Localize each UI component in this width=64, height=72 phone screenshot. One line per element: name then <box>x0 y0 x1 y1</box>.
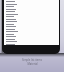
button[interactable]: List item 1 <box>4 0 59 3</box>
button[interactable]: List item 9 <box>4 24 59 27</box>
button[interactable]: List item 6 <box>4 15 59 18</box>
button[interactable]: List item 15 <box>4 42 59 45</box>
button[interactable]: List item 12 <box>4 33 59 36</box>
button[interactable]: List item 13 <box>4 36 59 39</box>
button[interactable]: List item 2 <box>4 3 59 6</box>
button[interactable]: List item 3 <box>4 6 59 9</box>
button[interactable]: List item 11 <box>4 30 59 33</box>
button[interactable]: List item 10 <box>4 27 59 30</box>
button[interactable]: List item 7 <box>4 18 59 21</box>
button[interactable]: List item 8 <box>4 21 59 24</box>
button[interactable]: List item 5 <box>4 12 59 15</box>
button[interactable]: List item 14 <box>4 39 59 42</box>
staticText: Simple list items <box>22 58 42 62</box>
button[interactable]: List item 4 <box>4 9 59 12</box>
staticText: Material <box>27 62 38 66</box>
